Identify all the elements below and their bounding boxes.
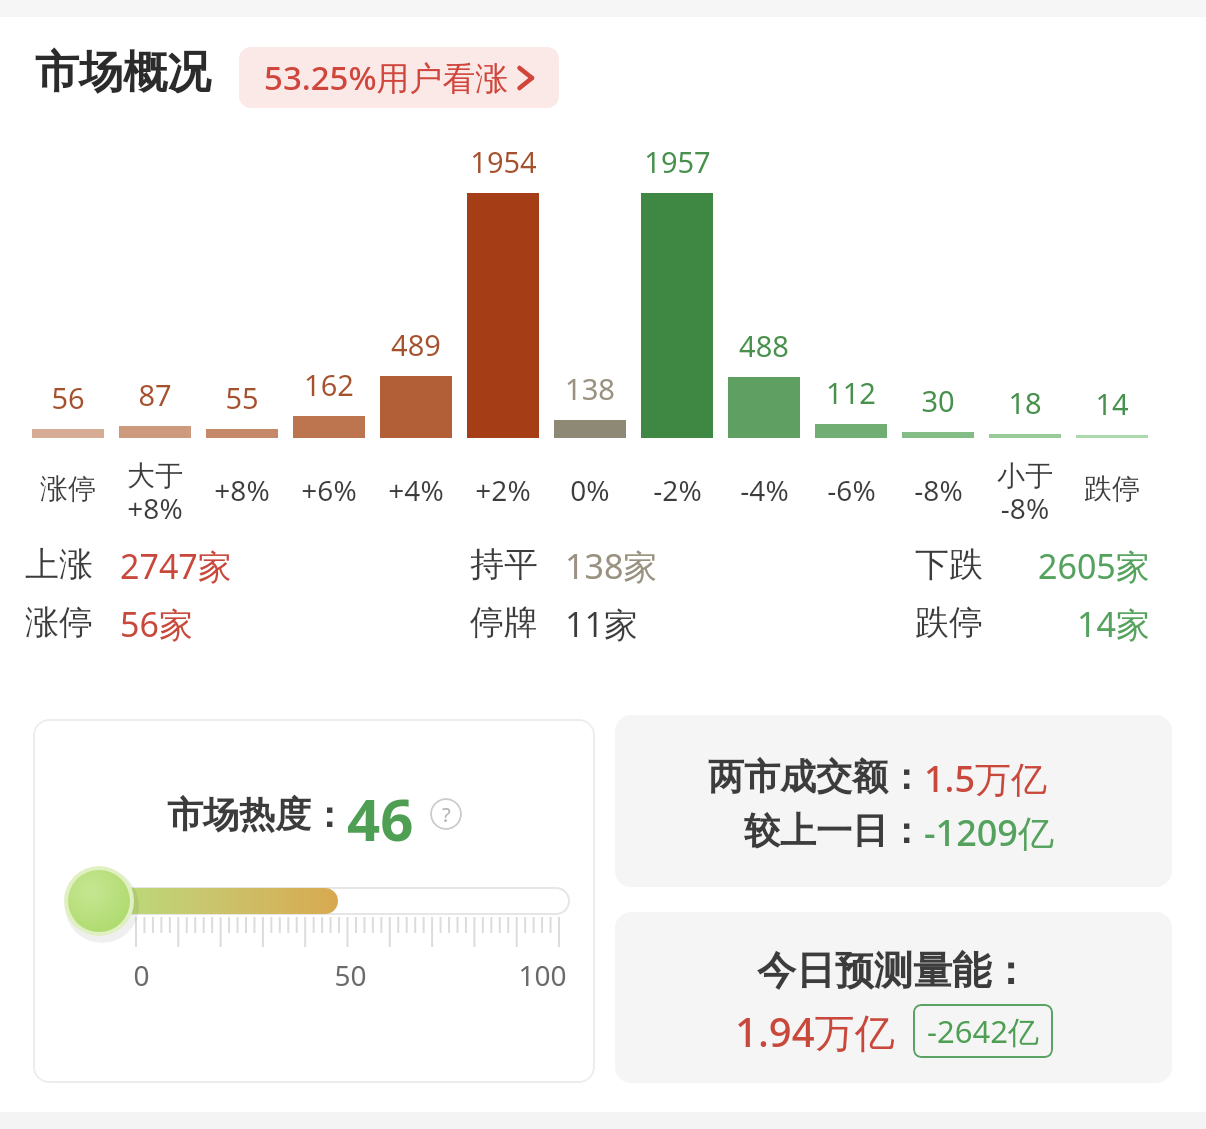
staticText: 0	[133, 956, 150, 994]
staticText: 2605家	[1038, 543, 1150, 589]
staticText: +6%	[301, 471, 357, 509]
staticText: 0%	[570, 471, 610, 509]
staticText: 55	[225, 378, 259, 417]
staticText: +2%	[475, 471, 531, 509]
staticText: 上涨	[25, 543, 93, 586]
staticText: -1209亿	[924, 808, 1054, 857]
staticText: 1.94万亿	[735, 1004, 895, 1059]
staticText: -6%	[827, 471, 876, 509]
staticText: -2642亿	[927, 1010, 1039, 1052]
staticText: 跌停	[1084, 471, 1140, 506]
staticText: 50	[334, 956, 367, 994]
button[interactable]: 53.25%用户看涨	[239, 47, 559, 108]
staticText: 今日预测量能：	[757, 946, 1030, 995]
staticText: 14家	[1077, 601, 1150, 647]
staticText: +8%	[214, 471, 270, 509]
staticText: 112	[826, 373, 876, 412]
staticText: 1.5万亿	[924, 754, 1047, 803]
staticText: 小于 -8%	[997, 458, 1053, 527]
staticText: 涨停	[40, 471, 96, 506]
staticText: 涨停	[25, 601, 93, 644]
staticText: 18	[1008, 383, 1042, 422]
staticText: 489	[391, 325, 441, 364]
staticText: 46	[347, 779, 414, 849]
staticText: 较上一日：	[744, 808, 924, 853]
staticText: 跌停	[915, 601, 983, 644]
staticText: 138家	[565, 543, 658, 589]
staticText: 56	[51, 378, 85, 417]
staticText: 市场概况	[35, 45, 211, 100]
staticText: 138	[565, 369, 615, 408]
staticText: 停牌	[470, 601, 538, 644]
staticText: -2%	[653, 471, 702, 509]
staticText: 87	[138, 375, 172, 414]
button[interactable]: ?	[430, 798, 462, 830]
staticText: 162	[304, 365, 354, 404]
staticText: 53.25%用户看涨	[264, 55, 509, 100]
staticText: 30	[921, 381, 955, 420]
staticText: 488	[739, 326, 789, 365]
staticText: -8%	[914, 471, 963, 509]
staticText: -4%	[740, 471, 789, 509]
staticText: 14	[1095, 384, 1129, 423]
staticText: ?	[442, 801, 451, 828]
staticText: 市场热度：	[167, 792, 347, 837]
staticText: 11家	[565, 601, 638, 647]
staticText: 1957	[644, 142, 711, 181]
staticText: 下跌	[915, 543, 983, 586]
staticText: 100	[518, 956, 567, 994]
button[interactable]: -2642亿	[913, 1004, 1053, 1058]
staticText: 两市成交额：	[708, 754, 924, 799]
staticText: 2747家	[120, 543, 232, 589]
staticText: +4%	[388, 471, 444, 509]
staticText: 1954	[470, 142, 537, 181]
staticText: 56家	[120, 601, 193, 647]
staticText: 大于 +8%	[127, 458, 183, 527]
staticText: 持平	[470, 543, 538, 586]
